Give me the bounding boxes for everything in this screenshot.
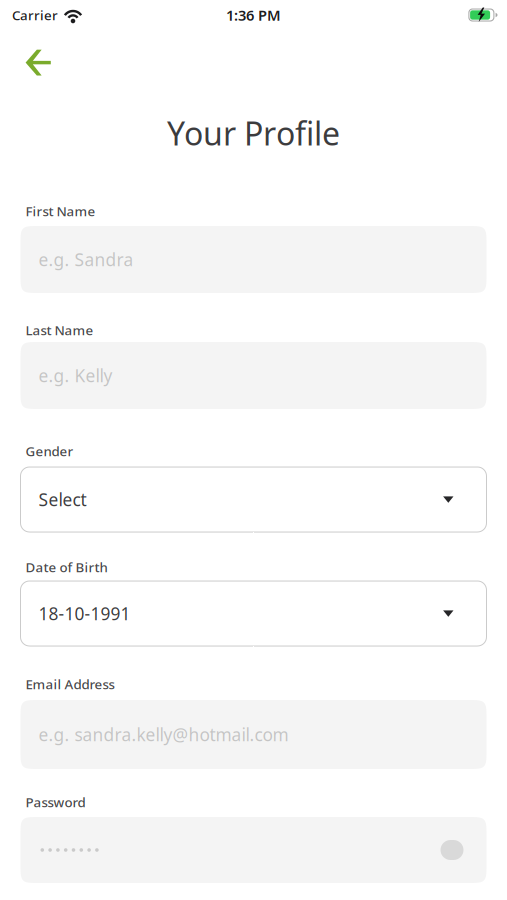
button[interactable]: 18-10-1991 — [20, 581, 486, 646]
button[interactable]: Select — [20, 467, 486, 532]
staticText: Last Name — [25, 321, 93, 339]
staticText: 18-10-1991 — [38, 602, 130, 625]
staticText: e.g. Kelly — [38, 364, 112, 387]
button[interactable]: Back — [0, 41, 66, 81]
button[interactable]: Show password — [439, 839, 464, 861]
staticText: First Name — [25, 202, 95, 220]
staticText: 1:36 PM — [226, 5, 281, 25]
staticText: Email Address — [25, 675, 114, 693]
staticText: Your Profile — [167, 112, 340, 154]
staticText: Password — [25, 793, 85, 811]
staticText: Select — [38, 488, 86, 511]
staticText: Carrier — [12, 6, 58, 24]
staticText: Date of Birth — [25, 558, 107, 576]
staticText: e.g. Sandra — [38, 248, 133, 271]
staticText: e.g. sandra.kelly@hotmail.com — [38, 723, 288, 746]
staticText: Gender — [25, 442, 73, 460]
